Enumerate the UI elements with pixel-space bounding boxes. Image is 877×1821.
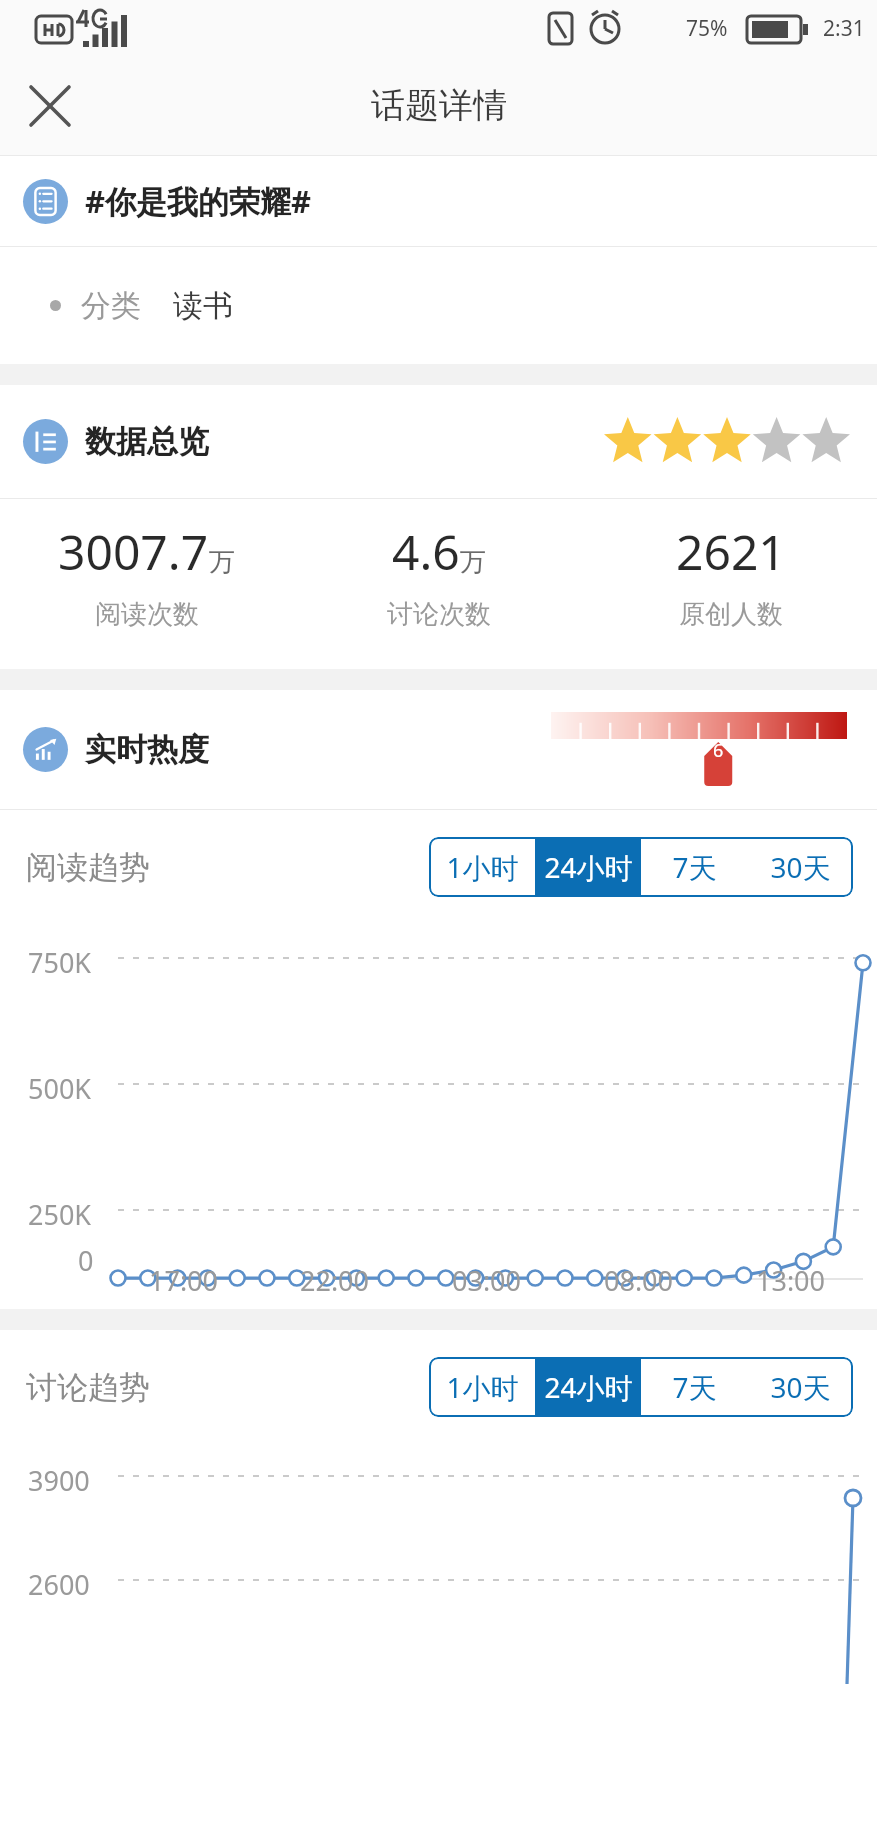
- staticText: 24小时: [544, 1368, 633, 1406]
- staticText: 讨论次数: [387, 598, 491, 631]
- staticText: 数据总览: [85, 422, 209, 461]
- staticText: 75%: [686, 14, 728, 43]
- staticText: 3900: [28, 1462, 90, 1499]
- button[interactable]: 实时热度: [0, 690, 877, 809]
- staticText: 24小时: [544, 848, 633, 886]
- staticText: 30天: [770, 1368, 831, 1406]
- button[interactable]: 30天: [747, 837, 853, 897]
- staticText: 2621: [676, 519, 786, 584]
- staticText: 原创人数: [679, 598, 783, 631]
- staticText: 03:00: [452, 1262, 522, 1299]
- staticText: 13:00: [756, 1262, 826, 1299]
- staticText: 500K: [28, 1070, 92, 1107]
- button[interactable]: 4.6: [293, 519, 585, 631]
- staticText: 250K: [28, 1196, 92, 1233]
- button[interactable]: 1小时: [429, 837, 535, 897]
- button[interactable]: 7天: [641, 1357, 747, 1417]
- staticText: 阅读次数: [95, 598, 199, 631]
- staticText: 讨论趋势: [26, 1368, 150, 1407]
- button[interactable]: 3007.7: [0, 519, 293, 631]
- staticText: 17:00: [149, 1262, 219, 1299]
- staticText: 万: [460, 546, 486, 579]
- staticText: 7天: [672, 848, 717, 886]
- button[interactable]: 1小时: [429, 1357, 535, 1417]
- staticText: #你是我的荣耀#: [85, 180, 312, 222]
- staticText: 750K: [28, 944, 92, 981]
- staticText: 实时热度: [85, 730, 209, 769]
- staticText: 话题详情: [371, 84, 507, 127]
- staticText: 22:00: [300, 1262, 370, 1299]
- staticText: 读书: [173, 287, 233, 325]
- staticText: 2:31: [823, 14, 865, 43]
- staticText: 4.6: [392, 519, 460, 584]
- staticText: 30天: [770, 848, 831, 886]
- staticText: 0: [78, 1242, 94, 1279]
- button[interactable]: #你是我的荣耀#: [0, 156, 877, 246]
- staticText: 分类: [81, 287, 141, 325]
- staticText: 1小时: [446, 1368, 519, 1406]
- button[interactable]: 分类: [0, 247, 877, 364]
- staticText: 1小时: [446, 848, 519, 886]
- staticText: 2600: [28, 1566, 90, 1603]
- staticText: 万: [209, 546, 235, 579]
- staticText: 08:00: [604, 1262, 674, 1299]
- button[interactable]: 2621: [585, 519, 877, 631]
- button[interactable]: Close: [14, 70, 86, 142]
- staticText: 3007.7: [58, 519, 209, 584]
- button[interactable]: 30天: [747, 1357, 853, 1417]
- button[interactable]: 7天: [641, 837, 747, 897]
- button[interactable]: 数据总览: [0, 385, 877, 498]
- staticText: 6: [713, 738, 724, 763]
- staticText: 阅读趋势: [26, 848, 150, 887]
- staticText: 7天: [672, 1368, 717, 1406]
- button[interactable]: 24小时: [535, 837, 641, 897]
- button[interactable]: 24小时: [535, 1357, 641, 1417]
